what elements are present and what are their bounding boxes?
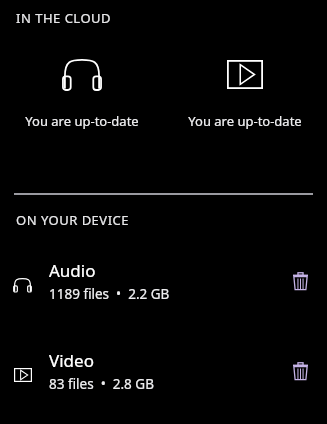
other: Video (14, 354, 40, 388)
staticText: You are up-to-date (25, 112, 139, 130)
staticText: You are up-to-date (188, 112, 302, 130)
staticText: 83 files • 2.8 GB (49, 375, 154, 393)
staticText: 1189 files • 2.2 GB (49, 285, 170, 303)
other: Audio (14, 264, 40, 298)
button[interactable]: Delete Video (285, 356, 315, 386)
staticText: ON YOUR DEVICE (16, 211, 130, 229)
staticText: Audio (49, 259, 96, 282)
staticText: IN THE CLOUD (16, 9, 112, 27)
staticText: Video (49, 349, 94, 372)
button[interactable]: Video (0, 349, 327, 393)
button[interactable]: Audio (0, 259, 327, 303)
button[interactable]: Audio up to date (0, 57, 163, 132)
button[interactable]: Video up to date (163, 57, 327, 132)
button[interactable]: Delete Audio (285, 266, 315, 296)
